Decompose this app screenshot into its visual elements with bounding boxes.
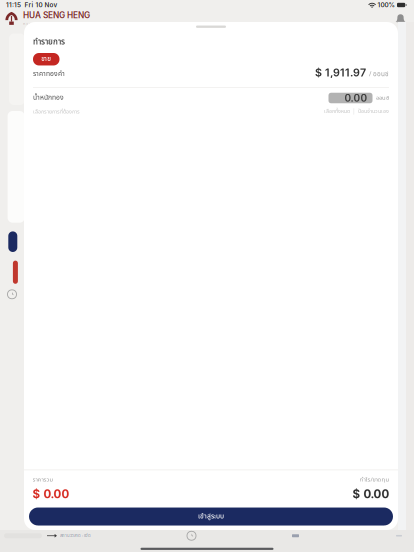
staticText: $ 1,911.97 — [315, 66, 366, 79]
staticText: $ 0.00 — [352, 487, 389, 501]
staticText: 11:15 — [6, 1, 21, 9]
staticText: ห ว ย เ ซ ง เ ฮ ง — [23, 21, 49, 27]
staticText: ทำรายการ — [33, 36, 65, 48]
staticText: HUA SENG HENG — [23, 10, 90, 20]
staticText: น้ำหนักทอง — [33, 93, 64, 103]
staticText: สถานะตลาด : เปิด — [60, 532, 91, 539]
staticText: 100% — [377, 1, 394, 9]
button[interactable]: ขาย — [33, 53, 59, 65]
staticText: 0.00 — [344, 92, 367, 104]
staticText: ราคาทองคำ — [33, 69, 65, 79]
staticText: $ 0.00 — [32, 487, 69, 501]
staticText: ออนซ์ — [376, 94, 389, 102]
staticText: | — [353, 108, 355, 115]
staticText: Fri 10 Nov — [24, 1, 57, 9]
staticText: / ออนซ์ — [369, 69, 389, 79]
staticText: เลือกทั้งหมด — [324, 107, 350, 115]
staticText: เข้าสู่ระบบ — [198, 511, 224, 522]
staticText: กำไร/ขาดทุน — [359, 475, 389, 484]
staticText: เลือกรายการที่ต้องการ — [33, 108, 80, 116]
staticText: ราคารวม — [32, 475, 53, 484]
staticText: ขาย — [41, 55, 51, 64]
button[interactable]: Notifications — [392, 11, 409, 26]
staticText: ป้อนจำนวนเอง — [358, 107, 389, 115]
button[interactable]: เข้าสู่ระบบ — [29, 507, 393, 525]
